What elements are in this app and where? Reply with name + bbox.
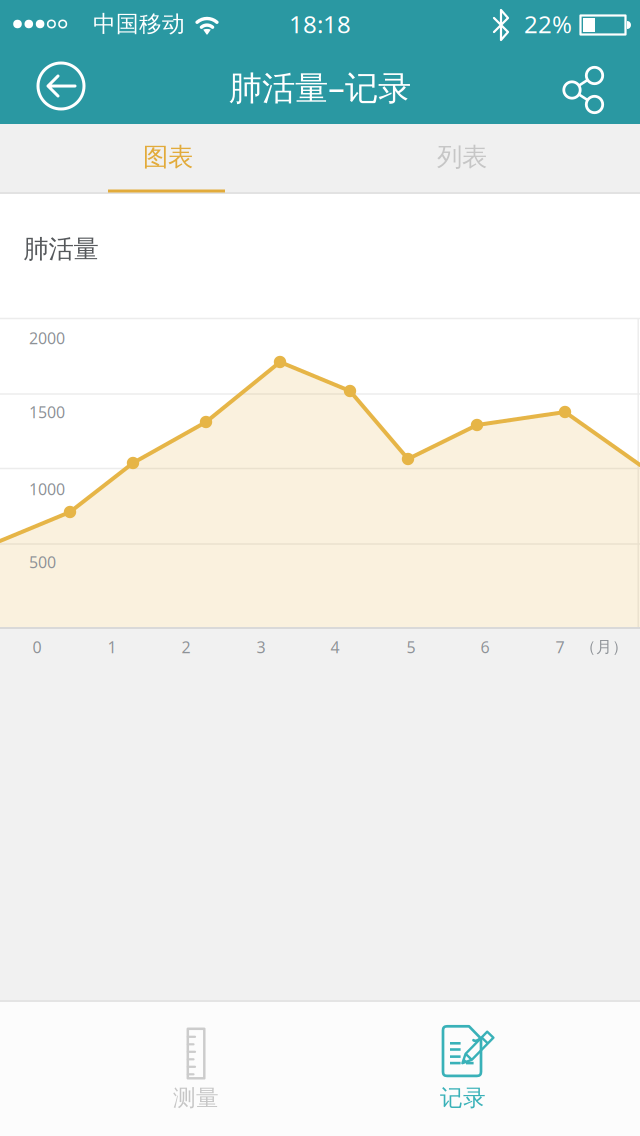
staticText: 0 <box>32 636 41 658</box>
staticText: 6 <box>480 636 489 658</box>
staticText: 肺活量–记录 <box>229 65 411 109</box>
staticText: 2 <box>181 636 190 658</box>
button[interactable]: 记录 <box>320 1002 640 1136</box>
staticText: （月） <box>580 637 628 657</box>
staticText: 记录 <box>440 1084 486 1112</box>
button[interactable]: 列表 <box>320 124 640 192</box>
staticText: 2000 <box>29 327 65 349</box>
button[interactable]: Back <box>36 61 86 111</box>
staticText: 肺活量 <box>23 233 98 264</box>
staticText: 5 <box>406 636 415 658</box>
staticText: 18:18 <box>289 8 351 40</box>
staticText: 测量 <box>173 1084 219 1112</box>
button[interactable]: 图表 <box>0 124 320 192</box>
staticText: 500 <box>29 551 56 573</box>
staticText: 4 <box>330 636 339 658</box>
staticText: 列表 <box>437 141 487 172</box>
staticText: 7 <box>555 636 564 658</box>
staticText: 3 <box>256 636 265 658</box>
staticText: 图表 <box>143 141 193 172</box>
staticText: 1000 <box>29 478 65 500</box>
button[interactable]: 测量 <box>0 1002 320 1136</box>
staticText: 中国移动 <box>93 10 185 38</box>
staticText: 22% <box>524 8 572 40</box>
staticText: 1500 <box>29 401 65 423</box>
staticText: 1 <box>107 636 116 658</box>
button[interactable]: Share <box>556 63 610 117</box>
